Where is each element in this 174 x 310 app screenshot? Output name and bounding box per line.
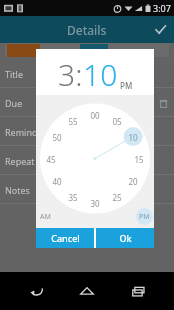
- button[interactable]: PM: [136, 208, 153, 225]
- staticText: 15: [134, 154, 144, 165]
- staticText: Details: [67, 22, 107, 38]
- staticText: 20: [128, 176, 138, 187]
- staticText: AM: [40, 212, 51, 222]
- button[interactable]: 30: [87, 195, 103, 211]
- staticText: Due: [5, 97, 23, 109]
- staticText: 10: [128, 132, 138, 143]
- button[interactable]: 40: [49, 173, 65, 189]
- button[interactable]: 50: [49, 129, 65, 145]
- button[interactable]: 05: [109, 113, 125, 129]
- staticText: Cancel: [51, 232, 80, 244]
- staticText: 55: [68, 116, 78, 127]
- button[interactable]: 25: [109, 189, 125, 205]
- button[interactable]: 10: [125, 129, 141, 145]
- button[interactable]: 45: [43, 151, 59, 167]
- staticText: Notes: [5, 184, 30, 196]
- button[interactable]: AM: [37, 208, 54, 225]
- staticText: PM: [139, 212, 150, 222]
- staticText: 35: [68, 192, 78, 203]
- staticText: 00: [90, 110, 100, 121]
- button[interactable]: 35: [65, 189, 81, 205]
- staticText: Reminder: [5, 126, 47, 138]
- button[interactable]: Save: [147, 16, 174, 43]
- staticText: Ok: [119, 232, 132, 244]
- staticText: 30: [90, 198, 100, 209]
- button[interactable]: 3:: [58, 54, 83, 95]
- button[interactable]: Ok: [96, 228, 154, 248]
- staticText: PM: [120, 80, 133, 91]
- staticText: Repeat: [5, 155, 35, 167]
- staticText: 50: [52, 132, 62, 143]
- button[interactable]: 10: [83, 54, 118, 95]
- staticText: 05: [112, 116, 122, 127]
- button[interactable]: Home: [72, 276, 102, 306]
- button[interactable]: 15: [131, 151, 147, 167]
- button[interactable]: Delete: [157, 97, 169, 109]
- staticText: Title: [5, 68, 23, 80]
- button[interactable]: 55: [65, 113, 81, 129]
- staticText: 25: [112, 192, 122, 203]
- button[interactable]: Cancel: [36, 228, 94, 248]
- staticText: 3:07: [153, 2, 171, 14]
- button[interactable]: 20: [125, 173, 141, 189]
- staticText: 40: [52, 176, 62, 187]
- button[interactable]: Back: [21, 276, 51, 306]
- button[interactable]: Recents: [123, 276, 153, 306]
- button[interactable]: 00: [87, 107, 103, 123]
- staticText: 45: [46, 154, 56, 165]
